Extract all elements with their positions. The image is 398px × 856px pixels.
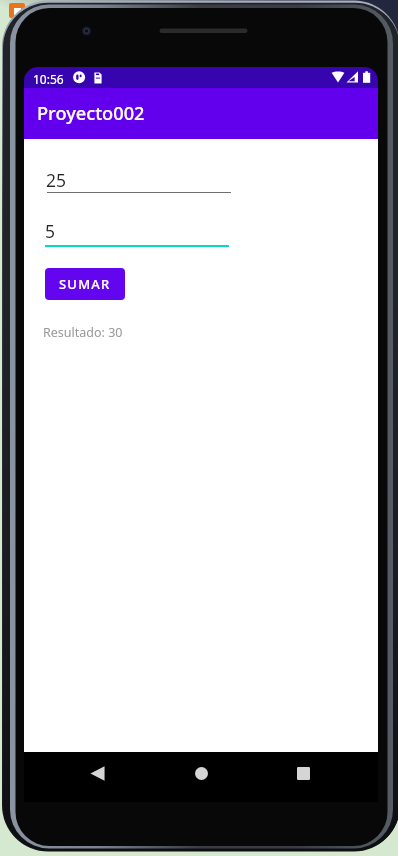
button[interactable]: SUMAR [45,268,125,300]
staticText: SUMAR [59,275,111,293]
staticText: 10:56 [33,71,64,87]
staticText: 25 [46,168,67,192]
button[interactable]: Back [87,763,107,783]
staticText: 5 [45,219,56,243]
staticText: Resultado: 30 [43,324,123,341]
button[interactable]: Recent apps [293,763,313,783]
staticText: Proyecto002 [37,101,145,126]
button[interactable]: Home [191,763,211,783]
